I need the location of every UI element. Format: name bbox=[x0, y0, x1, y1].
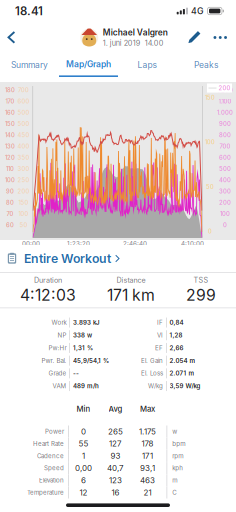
button[interactable]: Back bbox=[0, 22, 22, 53]
staticText: Max bbox=[140, 404, 155, 414]
staticText: 55 bbox=[79, 439, 89, 449]
staticText: 1.100 bbox=[218, 98, 231, 105]
staticText: 160 bbox=[5, 109, 15, 116]
staticText: Power bbox=[45, 428, 64, 435]
staticText: 12 bbox=[80, 488, 88, 497]
staticText: Distance bbox=[116, 276, 145, 284]
staticText: 150 bbox=[205, 94, 215, 101]
staticText: El. Loss bbox=[141, 370, 163, 377]
staticText: 18.41 bbox=[15, 4, 43, 18]
staticText: 4:12:03 bbox=[20, 285, 76, 304]
staticText: C bbox=[172, 489, 176, 496]
staticText: 338 w bbox=[73, 331, 92, 339]
staticText: 265 bbox=[108, 427, 123, 436]
staticText: Entire Workout bbox=[24, 251, 111, 266]
staticText: 1,31 % bbox=[73, 344, 93, 352]
staticText: 200 bbox=[219, 199, 231, 206]
staticText: 45,9/54,1 % bbox=[73, 357, 109, 364]
staticText: 1,28 bbox=[170, 331, 183, 339]
staticText: 0 bbox=[81, 427, 86, 436]
staticText: Duration bbox=[34, 276, 62, 284]
staticText: 170 bbox=[5, 98, 14, 105]
staticText: 489 m/h bbox=[73, 382, 99, 390]
staticText: 120 bbox=[5, 154, 15, 161]
staticText: 2.071 m bbox=[170, 370, 195, 377]
staticText: bpm bbox=[172, 440, 185, 447]
staticText: 140 bbox=[5, 132, 15, 139]
staticText: 463 bbox=[140, 475, 155, 485]
staticText: 400 bbox=[17, 143, 29, 150]
staticText: 150 bbox=[5, 120, 15, 127]
staticText: 21 bbox=[144, 488, 152, 497]
staticText: 1 bbox=[82, 451, 85, 461]
staticText: 250 bbox=[17, 177, 29, 184]
staticText: 900 bbox=[219, 120, 231, 127]
button[interactable]: Summary bbox=[0, 53, 59, 77]
staticText: 0,84 bbox=[170, 319, 184, 326]
staticText: 178 bbox=[142, 439, 154, 449]
staticText: Work bbox=[51, 319, 66, 326]
staticText: 127 bbox=[109, 439, 122, 449]
staticText: 40,7 bbox=[107, 463, 124, 473]
staticText: 6 bbox=[81, 475, 86, 485]
staticText: 130 bbox=[5, 143, 15, 150]
staticText: 0,00 bbox=[75, 463, 92, 473]
staticText: 300 bbox=[219, 188, 231, 195]
button[interactable]: Edit workout bbox=[183, 22, 205, 53]
staticText: 500 bbox=[17, 109, 29, 116]
staticText: 150 bbox=[18, 199, 28, 206]
staticText: 500 bbox=[219, 165, 231, 172]
staticText: 600 bbox=[17, 98, 29, 105]
staticText: El. Gain bbox=[141, 357, 163, 364]
staticText: Pw:Hr bbox=[48, 344, 66, 352]
staticText: 3,59 W/kg bbox=[170, 382, 201, 390]
button[interactable]: More options bbox=[205, 22, 236, 53]
staticText: 1.200 bbox=[217, 87, 233, 94]
staticText: 1:23:20 bbox=[67, 240, 90, 247]
staticText: 60 bbox=[6, 222, 14, 229]
staticText: 2:46:40 bbox=[123, 240, 147, 247]
staticText: 0 bbox=[223, 222, 227, 229]
staticText: m bbox=[172, 477, 177, 484]
staticText: Pwr. Bal. bbox=[41, 357, 66, 364]
staticText: 1.175 bbox=[139, 427, 156, 436]
staticText: Laps bbox=[137, 60, 157, 70]
staticText: 100 bbox=[18, 210, 28, 217]
staticText: 299 bbox=[186, 285, 216, 304]
staticText: -- bbox=[73, 370, 79, 377]
staticText: 100 bbox=[5, 177, 15, 184]
button[interactable]: Map/Graph bbox=[59, 53, 118, 77]
button[interactable]: Peaks bbox=[177, 53, 236, 77]
staticText: 00:00 bbox=[22, 240, 40, 247]
staticText: 90 bbox=[6, 188, 14, 195]
staticText: kph bbox=[172, 464, 183, 472]
staticText: 4:10:00 bbox=[181, 240, 204, 247]
staticText: 93 bbox=[111, 451, 121, 461]
staticText: 50 bbox=[19, 222, 27, 229]
staticText: Temperature bbox=[27, 489, 64, 496]
button[interactable]: Laps bbox=[118, 53, 177, 77]
staticText: 80 bbox=[6, 199, 14, 206]
staticText: 200 bbox=[17, 188, 29, 195]
staticText: 700 bbox=[18, 87, 29, 94]
staticText: VI bbox=[157, 331, 163, 339]
staticText: 350 bbox=[17, 154, 29, 161]
staticText: Summary bbox=[11, 60, 48, 70]
staticText: Speed bbox=[44, 464, 64, 472]
staticText: 123 bbox=[109, 475, 122, 485]
button[interactable]: Entire Workout bbox=[0, 245, 236, 272]
staticText: 500 bbox=[17, 120, 29, 127]
staticText: 100 bbox=[205, 139, 215, 146]
staticText: 50 bbox=[206, 183, 214, 190]
staticText: Grade bbox=[48, 370, 66, 377]
staticText: 93,1 bbox=[140, 463, 155, 473]
staticText: 14.00 bbox=[145, 39, 164, 47]
staticText: 100 bbox=[220, 210, 230, 217]
staticText: 4G bbox=[191, 6, 204, 16]
staticText: 180 bbox=[5, 87, 15, 94]
staticText: 1.000 bbox=[217, 109, 233, 116]
staticText: 16 bbox=[112, 488, 120, 497]
staticText: TSS bbox=[193, 276, 208, 284]
staticText: Michael Valgren bbox=[103, 27, 168, 38]
staticText: 300 bbox=[17, 165, 29, 172]
